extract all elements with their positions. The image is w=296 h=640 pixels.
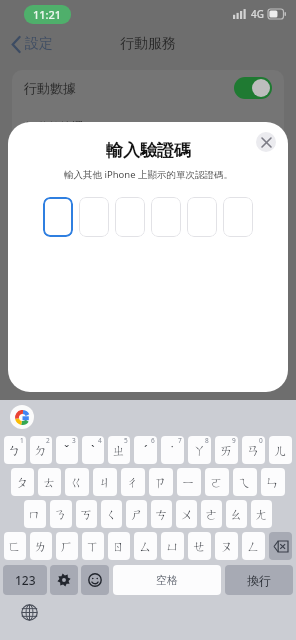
- staticText: ㄗ: [154, 474, 168, 490]
- button[interactable]: ㄅ: [4, 436, 26, 464]
- staticText: 123: [15, 572, 36, 588]
- button[interactable]: 設定: [50, 565, 78, 595]
- button[interactable]: ㄌ: [30, 532, 52, 560]
- button[interactable]: 驗證碼欄位 1: [43, 197, 73, 237]
- button[interactable]: ㄘ: [151, 500, 172, 528]
- staticText: 8: [205, 436, 209, 445]
- button[interactable]: ㄒ: [82, 532, 104, 560]
- staticText: ㄩ: [166, 538, 180, 554]
- button[interactable]: ㄗ: [149, 468, 173, 496]
- staticText: ㄞ: [220, 442, 234, 458]
- button[interactable]: ㄚ: [188, 436, 211, 464]
- button[interactable]: ㄓ: [108, 436, 130, 464]
- staticText: ㄢ: [247, 442, 261, 458]
- button[interactable]: Google: [10, 405, 34, 429]
- button[interactable]: ㄥ: [242, 532, 265, 560]
- button[interactable]: ㄧ: [177, 468, 201, 496]
- staticText: ㄉ: [34, 442, 48, 458]
- button[interactable]: ㄟ: [233, 468, 257, 496]
- staticText: ㄊ: [43, 474, 57, 490]
- staticText: 9: [232, 436, 236, 445]
- button[interactable]: ㄋ: [50, 500, 72, 528]
- button[interactable]: ㄔ: [121, 468, 145, 496]
- staticText: ㄌ: [34, 538, 48, 554]
- button[interactable]: ㄐ: [93, 468, 117, 496]
- staticText: 4: [98, 436, 102, 445]
- button[interactable]: ㄛ: [205, 468, 229, 496]
- staticText: ㄒ: [86, 538, 100, 554]
- button[interactable]: 刪除: [269, 532, 292, 560]
- button[interactable]: ㄍ: [65, 468, 89, 496]
- staticText: ㄖ: [112, 538, 126, 554]
- button[interactable]: ㄠ: [226, 500, 247, 528]
- staticText: 1: [20, 436, 24, 445]
- staticText: 空格: [156, 573, 178, 587]
- button[interactable]: ㄤ: [251, 500, 272, 528]
- button[interactable]: ㄡ: [215, 532, 238, 560]
- staticText: ˙: [171, 441, 174, 459]
- staticText: ㄙ: [139, 538, 153, 554]
- button[interactable]: ㄞ: [215, 436, 238, 464]
- staticText: 輸入驗證碼: [106, 140, 191, 161]
- button[interactable]: 關閉: [256, 132, 276, 152]
- staticText: 行動數據選項: [24, 119, 96, 134]
- staticText: 3: [72, 436, 76, 445]
- staticText: ㄐ: [98, 474, 112, 490]
- button[interactable]: 驗證碼欄位 2: [79, 197, 109, 237]
- staticText: ㄧ: [182, 474, 196, 490]
- button[interactable]: ㄑ: [101, 500, 122, 528]
- button[interactable]: 驗證碼欄位 5: [187, 197, 217, 237]
- button[interactable]: ˊ: [134, 436, 157, 464]
- button[interactable]: ㄎ: [76, 500, 97, 528]
- button[interactable]: 換行: [225, 565, 293, 595]
- button[interactable]: ㄨ: [176, 500, 197, 528]
- button[interactable]: 表情符號: [81, 565, 109, 595]
- button[interactable]: ㄦ: [269, 436, 292, 464]
- button[interactable]: ㄕ: [126, 500, 147, 528]
- button[interactable]: 123: [3, 565, 47, 595]
- staticText: ㄕ: [130, 506, 144, 522]
- button[interactable]: ㄩ: [161, 532, 184, 560]
- button[interactable]: ㄙ: [134, 532, 157, 560]
- staticText: ˇ: [64, 441, 70, 459]
- staticText: ㄈ: [8, 538, 22, 554]
- staticText: ㄛ: [210, 474, 224, 490]
- staticText: 4G: [251, 7, 264, 21]
- button[interactable]: ㄆ: [11, 468, 34, 496]
- button[interactable]: ㄢ: [242, 436, 265, 464]
- button[interactable]: ˋ: [82, 436, 104, 464]
- button[interactable]: 驗證碼欄位 3: [115, 197, 145, 237]
- button[interactable]: 驗證碼欄位 4: [151, 197, 181, 237]
- button[interactable]: ˙: [161, 436, 184, 464]
- button[interactable]: ㄇ: [24, 500, 46, 528]
- staticText: 2: [46, 436, 50, 445]
- staticText: ㄏ: [60, 538, 74, 554]
- button[interactable]: ㄜ: [201, 500, 222, 528]
- staticText: 設定: [25, 35, 53, 53]
- staticText: ㄑ: [105, 506, 119, 522]
- button[interactable]: ㄉ: [30, 436, 52, 464]
- staticText: ㄋ: [54, 506, 68, 522]
- button[interactable]: 驗證碼欄位 6: [223, 197, 253, 237]
- staticText: ㄝ: [193, 538, 207, 554]
- staticText: ㄥ: [247, 538, 261, 554]
- button[interactable]: ㄊ: [38, 468, 61, 496]
- staticText: 0: [259, 436, 263, 445]
- button[interactable]: ㄣ: [261, 468, 285, 496]
- button[interactable]: 空格: [113, 565, 221, 595]
- button[interactable]: ㄖ: [108, 532, 130, 560]
- button[interactable]: 設定: [8, 31, 57, 57]
- button[interactable]: ˇ: [56, 436, 78, 464]
- staticText: 5: [124, 436, 128, 445]
- button[interactable]: ㄈ: [4, 532, 26, 560]
- button[interactable]: 切換鍵盤: [18, 601, 40, 623]
- staticText: ㄨ: [180, 506, 194, 522]
- button[interactable]: ㄏ: [56, 532, 78, 560]
- staticText: 換行: [247, 573, 271, 588]
- staticText: ㄡ: [220, 538, 234, 554]
- button[interactable]: ㄝ: [188, 532, 211, 560]
- staticText: ㄠ: [230, 506, 244, 522]
- staticText: ㄜ: [205, 506, 219, 522]
- staticText: ㄦ: [274, 442, 288, 458]
- staticText: ㄇ: [28, 506, 42, 522]
